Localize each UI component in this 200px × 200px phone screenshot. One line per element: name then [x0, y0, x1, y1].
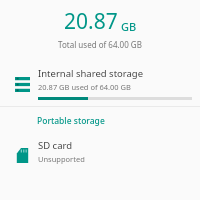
button[interactable]: SD card: [0, 137, 200, 169]
staticText: Portable storage: [37, 115, 105, 127]
staticText: 20.87: [64, 7, 118, 36]
staticText: GB: [121, 19, 137, 34]
other: Internal storage: [15, 77, 30, 92]
staticText: 20.87 GB used of 64.00 GB: [38, 82, 131, 92]
button[interactable]: Internal storage: [0, 64, 200, 103]
staticText: Unsupported: [38, 154, 85, 164]
staticText: SD card: [38, 139, 73, 152]
staticText: Internal shared storage: [38, 67, 144, 80]
staticText: Total used of 64.00 GB: [0, 39, 200, 50]
other: SD card: [15, 148, 30, 163]
